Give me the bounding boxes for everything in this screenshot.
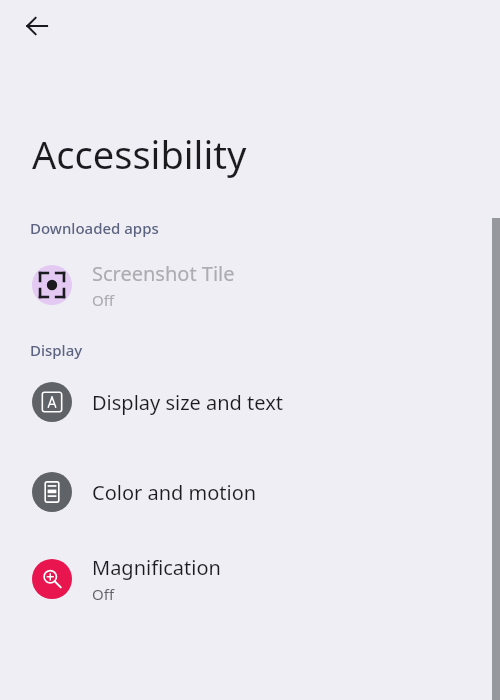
button[interactable]: Magnification	[0, 546, 500, 612]
button[interactable]: Back	[13, 2, 61, 50]
staticText: Downloaded apps	[30, 218, 159, 238]
staticText: Off	[92, 584, 115, 604]
staticText: Accessibility	[32, 128, 247, 180]
staticText: Magnification	[92, 554, 221, 581]
button[interactable]: Screenshot Tile	[0, 252, 500, 318]
button[interactable]: Display size and text	[0, 374, 500, 430]
staticText: Display	[30, 340, 83, 360]
staticText: Screenshot Tile	[92, 260, 235, 287]
staticText: Color and motion	[92, 479, 257, 506]
button[interactable]: Color and motion	[0, 464, 500, 520]
staticText: Off	[92, 290, 115, 310]
staticText: Display size and text	[92, 389, 284, 416]
